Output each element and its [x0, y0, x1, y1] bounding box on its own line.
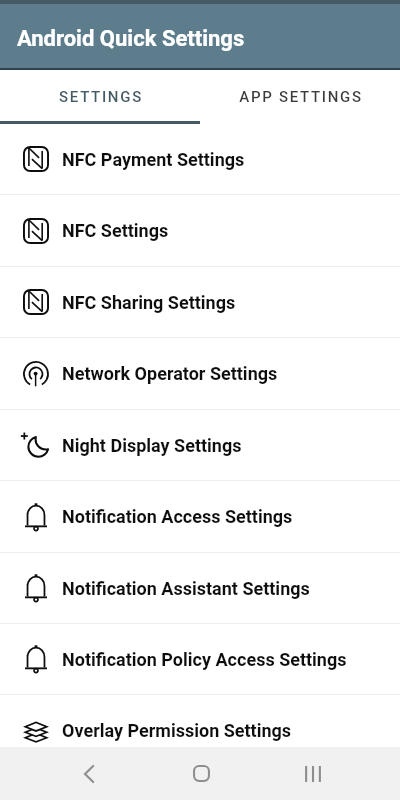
staticText: Network Operator Settings	[62, 363, 278, 384]
staticText: Notification Access Settings	[62, 506, 293, 527]
button[interactable]: APP SETTINGS	[200, 70, 400, 124]
staticText: APP SETTINGS	[239, 88, 363, 106]
button[interactable]: SETTINGS	[0, 70, 200, 124]
staticText: NFC Settings	[62, 220, 169, 241]
staticText: Notification Policy Access Settings	[62, 649, 347, 670]
staticText: NFC Sharing Settings	[62, 292, 236, 313]
staticText: Notification Assistant Settings	[62, 578, 310, 599]
button[interactable]: Back	[61, 747, 117, 800]
staticText: Android Quick Settings	[17, 26, 245, 52]
button[interactable]: Network Operator Settings	[0, 338, 400, 409]
button[interactable]: Notification Access Settings	[0, 481, 400, 552]
button[interactable]: NFC Settings	[0, 195, 400, 266]
button[interactable]: Notification Assistant Settings	[0, 553, 400, 623]
button[interactable]: Recent apps	[285, 747, 341, 800]
button[interactable]: Notification Policy Access Settings	[0, 624, 400, 694]
button[interactable]: NFC Payment Settings	[0, 124, 400, 194]
button[interactable]: Home	[173, 747, 229, 800]
staticText: Night Display Settings	[62, 435, 242, 456]
button[interactable]: NFC Sharing Settings	[0, 267, 400, 337]
staticText: NFC Payment Settings	[62, 149, 245, 170]
button[interactable]: Night Display Settings	[0, 410, 400, 480]
staticText: SETTINGS	[59, 88, 143, 106]
staticText: Overlay Permission Settings	[62, 720, 292, 741]
button[interactable]: Overlay Permission Settings	[0, 695, 400, 766]
